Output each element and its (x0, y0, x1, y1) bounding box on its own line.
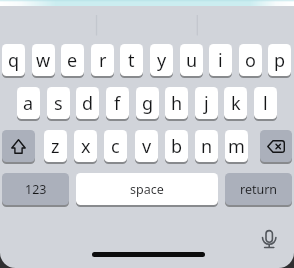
button[interactable]: return (225, 173, 292, 205)
button[interactable] (2, 130, 35, 162)
staticText: y (157, 48, 167, 73)
button[interactable]: i (209, 44, 232, 76)
staticText: u (186, 48, 198, 73)
staticText: v (142, 134, 152, 159)
button[interactable]: c (104, 130, 127, 162)
button[interactable]: l (254, 87, 277, 119)
button[interactable]: k (224, 87, 247, 119)
staticText: w (36, 48, 51, 73)
staticText: r (99, 48, 107, 73)
staticText: a (23, 91, 34, 116)
button[interactable] (260, 130, 292, 162)
button[interactable]: q (2, 44, 25, 76)
button[interactable]: s (47, 87, 70, 119)
button[interactable]: d (76, 87, 99, 119)
staticText: f (114, 91, 121, 116)
staticText: s (54, 91, 63, 116)
staticText: return (240, 181, 278, 198)
button[interactable]: a (17, 87, 40, 119)
staticText: p (274, 48, 286, 73)
button[interactable]: x (74, 130, 97, 162)
button[interactable]: r (91, 44, 114, 76)
staticText: m (228, 134, 245, 159)
staticText: b (171, 134, 183, 159)
button[interactable]: v (135, 130, 158, 162)
button[interactable]: g (136, 87, 159, 119)
staticText: q (8, 48, 20, 73)
staticText: n (201, 134, 213, 159)
staticText: x (81, 134, 91, 159)
button[interactable]: n (195, 130, 218, 162)
button[interactable]: z (44, 130, 67, 162)
staticText: k (231, 91, 241, 116)
button[interactable]: p (268, 44, 291, 76)
button[interactable]: h (165, 87, 188, 119)
button[interactable]: f (106, 87, 129, 119)
staticText: j (204, 91, 209, 116)
staticText: g (142, 91, 154, 116)
staticText: 123 (25, 181, 47, 198)
button[interactable]: w (32, 44, 55, 76)
staticText: z (51, 134, 60, 159)
staticText: h (171, 91, 183, 116)
button[interactable]: e (61, 44, 84, 76)
staticText: d (82, 91, 94, 116)
staticText: o (245, 48, 256, 73)
button[interactable]: o (239, 44, 262, 76)
button[interactable]: j (195, 87, 218, 119)
button[interactable] (258, 228, 281, 251)
staticText: l (263, 91, 268, 116)
button[interactable]: 123 (2, 173, 69, 205)
button[interactable]: b (165, 130, 188, 162)
button[interactable] (92, 252, 205, 257)
staticText: e (67, 48, 78, 73)
staticText: i (218, 48, 223, 73)
staticText: t (128, 48, 135, 73)
staticText: space (130, 181, 164, 198)
staticText: c (111, 134, 120, 159)
button[interactable]: u (180, 44, 203, 76)
button[interactable]: t (120, 44, 143, 76)
button[interactable]: y (150, 44, 173, 76)
button[interactable]: m (225, 130, 248, 162)
button[interactable]: space (76, 173, 218, 205)
